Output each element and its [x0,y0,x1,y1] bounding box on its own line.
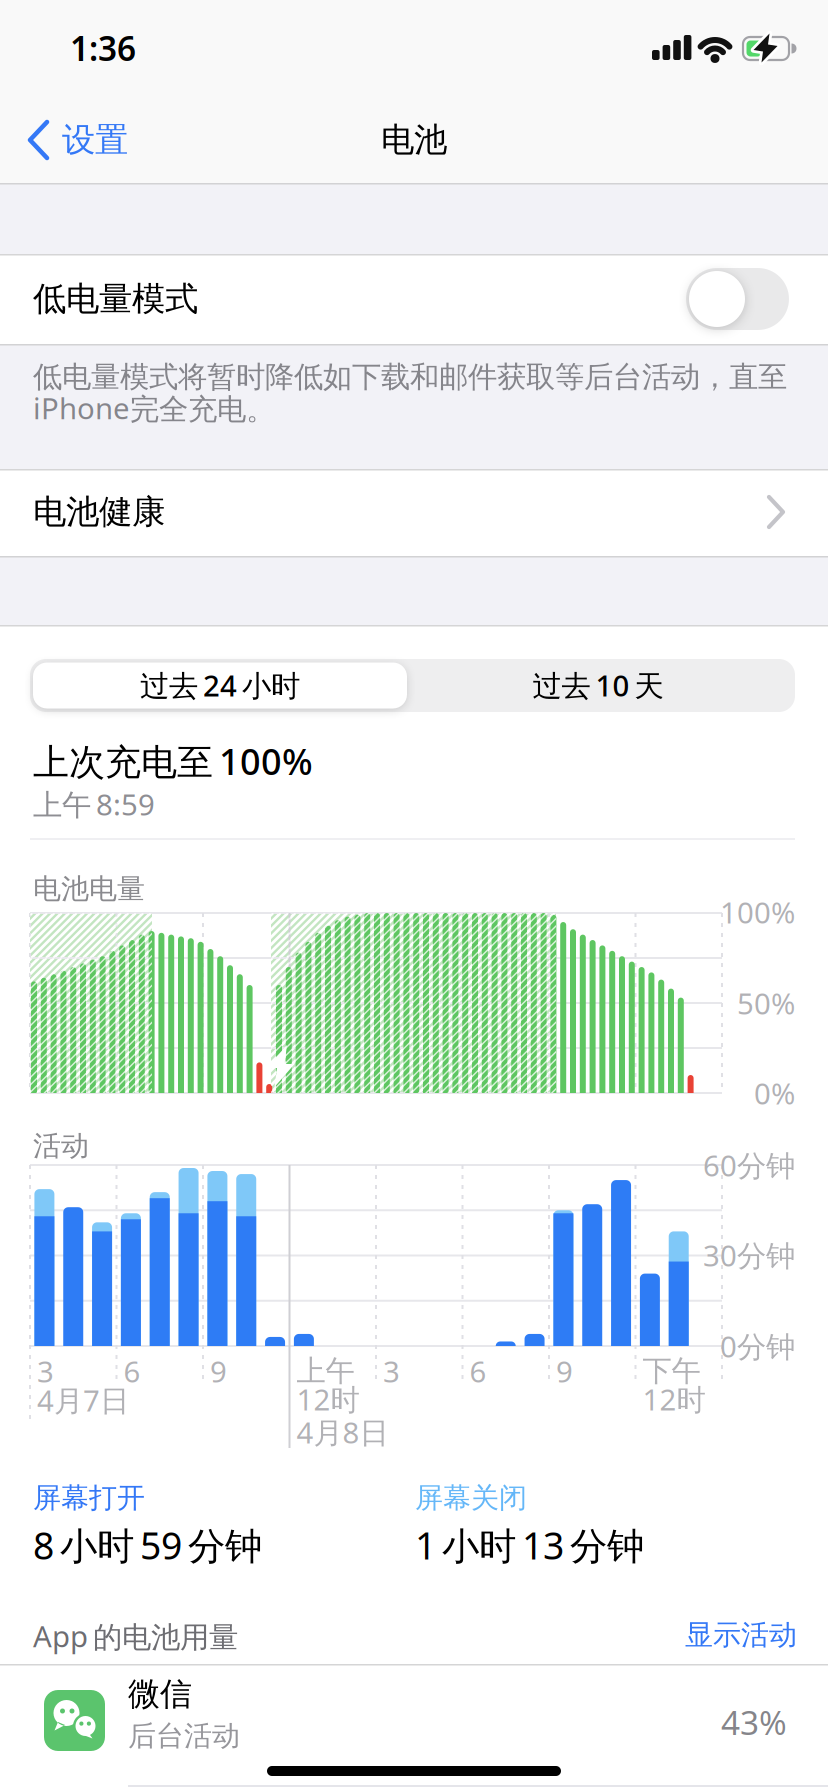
staticText: 下午 [642,1353,700,1389]
staticText: 9 [556,1351,573,1390]
staticText: 显示活动 [685,1618,797,1652]
button[interactable]: 显示活动 [597,1613,797,1657]
staticText: 电池电量 [33,872,145,906]
staticText: 1:36 [70,26,136,70]
button[interactable]: 过去 10 天 [411,659,791,712]
button[interactable]: 低电量模式 [686,268,789,330]
staticText: 0% [754,1073,795,1112]
staticText: 0分钟 [720,1326,795,1365]
staticText: 设置 [62,119,128,160]
button[interactable]: 过去 24 小时 [30,659,411,712]
staticText: 过去 10 天 [532,665,663,704]
staticText: 低电量模式 [33,278,198,319]
staticText: 100% [720,892,795,931]
staticText: 过去 24 小时 [140,665,300,704]
staticText: 60分钟 [703,1145,795,1184]
staticText: 屏幕关闭 [415,1481,527,1515]
staticText: 50% [737,983,795,1022]
staticText: 活动 [33,1129,89,1163]
button[interactable]: 微信 [0,1664,828,1790]
staticText: 电池 [381,119,447,160]
button[interactable]: 设置 [20,108,190,172]
staticText: 1 小时 13 分钟 [415,1520,644,1570]
staticText: 8 小时 59 分钟 [33,1520,262,1570]
staticText: 12时 [642,1379,705,1418]
staticText: 电池健康 [33,491,165,532]
staticText: App 的电池用量 [33,1616,238,1655]
staticText: 3 [383,1351,400,1390]
staticText: 后台活动 [128,1719,240,1753]
staticText: 6 [123,1351,140,1390]
staticText: 微信 [128,1674,192,1714]
staticText: 6 [469,1351,486,1390]
staticText: 低电量模式将暂时降低如下载和邮件获取等后台活动，直至 [33,359,787,395]
staticText: iPhone完全充电。 [33,388,275,427]
button[interactable]: 电池健康 [0,469,828,556]
staticText: 上次充电至 100% [33,737,313,785]
staticText: 屏幕打开 [33,1481,145,1515]
staticText: 3 [37,1351,54,1390]
staticText: 4月8日 [296,1412,388,1451]
staticText: 43% [721,1700,787,1744]
staticText: 上午 8:59 [33,784,155,823]
staticText: 上午 [296,1353,354,1389]
staticText: 30分钟 [703,1235,795,1274]
staticText: 9 [210,1351,227,1390]
staticText: 4月7日 [37,1380,129,1419]
staticText: 12时 [296,1379,359,1418]
